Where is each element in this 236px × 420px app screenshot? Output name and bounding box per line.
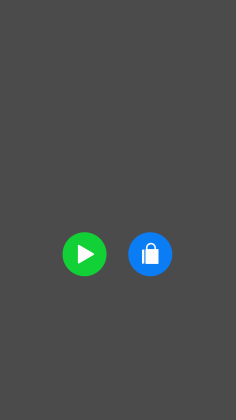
button[interactable]: Shop [128, 232, 172, 276]
button[interactable]: Play [62, 232, 106, 276]
